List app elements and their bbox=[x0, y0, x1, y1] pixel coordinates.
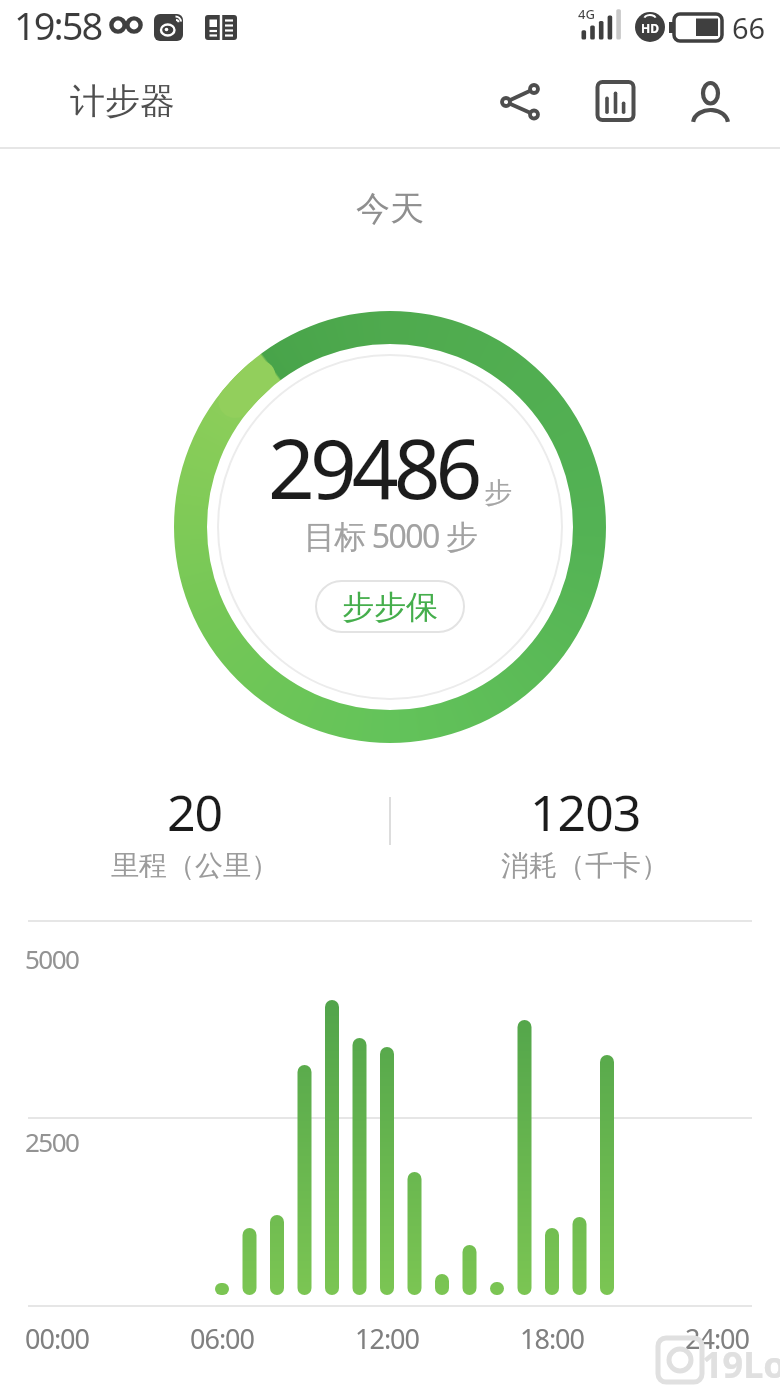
staticText: 66 bbox=[732, 8, 766, 47]
staticText: 步步保 bbox=[342, 587, 438, 627]
staticText: 里程（公里） bbox=[111, 848, 279, 883]
staticText: 5000 bbox=[25, 941, 79, 976]
staticText: 18:00 bbox=[507, 1320, 597, 1357]
staticText: 4G bbox=[578, 5, 595, 23]
staticText: 步 bbox=[484, 475, 512, 510]
staticText: 12:00 bbox=[342, 1320, 432, 1357]
staticText: 2500 bbox=[25, 1124, 79, 1159]
staticText: 今天 bbox=[0, 187, 780, 230]
staticText: 19Lou bbox=[702, 1340, 780, 1386]
staticText: 20 bbox=[167, 778, 223, 846]
staticText: 24:00 bbox=[672, 1320, 762, 1357]
staticText: 目标 5000 步 bbox=[0, 514, 780, 558]
staticText: 1203 bbox=[530, 778, 641, 846]
staticText: 06:00 bbox=[177, 1320, 267, 1357]
staticText: 消耗（千卡） bbox=[501, 848, 669, 883]
staticText: HD bbox=[637, 20, 663, 36]
staticText: 计步器 bbox=[70, 79, 175, 123]
staticText: 29486 bbox=[268, 411, 478, 523]
staticText: 19:58 bbox=[14, 0, 102, 51]
staticText: 00:00 bbox=[12, 1320, 102, 1357]
